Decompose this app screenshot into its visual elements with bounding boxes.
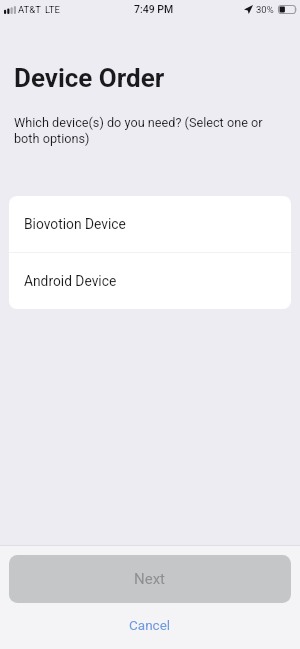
staticText: Which device(s) do you need? (Select one… — [14, 115, 263, 147]
staticText: AT&T — [18, 4, 41, 15]
staticText: Biovotion Device — [24, 216, 126, 232]
staticText: Cancel — [129, 617, 171, 633]
button[interactable]: Next — [9, 555, 291, 603]
button[interactable]: Biovotion Device — [9, 196, 291, 252]
staticText: Next — [134, 570, 166, 588]
other: Cellular signal strength — [4, 6, 16, 14]
button[interactable]: Cancel — [0, 608, 300, 642]
other: Location services active — [244, 5, 253, 14]
staticText: LTE — [45, 4, 60, 15]
staticText: Device Order — [14, 63, 165, 93]
staticText: 30% — [256, 4, 274, 15]
button[interactable]: Android Device — [9, 253, 291, 309]
other: Battery 30 percent — [278, 5, 298, 14]
staticText: 7:49 PM — [134, 3, 174, 15]
staticText: Android Device — [24, 273, 117, 289]
